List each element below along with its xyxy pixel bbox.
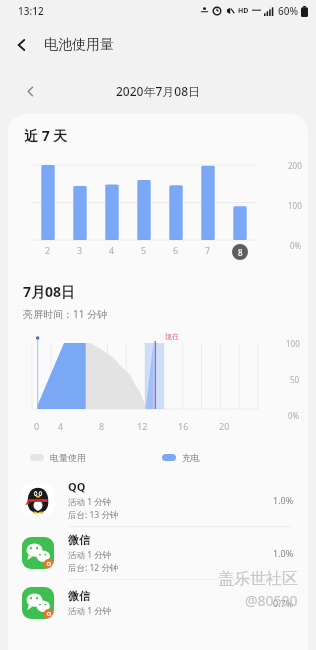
staticText: 0.7%: [273, 597, 294, 609]
staticText: 现在: [165, 332, 179, 341]
staticText: 100: [286, 338, 300, 349]
staticText: 活动 1 分钟: [68, 549, 112, 561]
staticText: 1.0%: [273, 494, 294, 506]
staticText: 13:12: [18, 4, 44, 18]
staticText: 8: [238, 247, 243, 258]
staticText: 活动 1 分钟: [68, 496, 112, 508]
staticText: 0%: [290, 240, 302, 251]
staticText: 8: [99, 420, 105, 432]
staticText: 微信: [68, 589, 90, 603]
staticText: 充电: [182, 452, 200, 463]
staticText: 1.0%: [273, 547, 294, 559]
staticText: 4: [109, 244, 115, 256]
staticText: 电量使用: [50, 452, 86, 463]
staticText: 12: [137, 420, 148, 432]
staticText: 16: [178, 420, 189, 432]
staticText: 0: [34, 420, 40, 432]
staticText: 亮屏时间：11 分钟: [23, 307, 108, 321]
staticText: 近 7 天: [24, 126, 68, 145]
button[interactable]: 微信: [8, 580, 308, 626]
staticText: 7: [205, 244, 211, 256]
button[interactable]: Back: [0, 23, 44, 67]
staticText: 2: [45, 244, 51, 256]
button[interactable]: 微信: [8, 527, 308, 579]
staticText: HD: [238, 6, 249, 16]
staticText: 后台: 12 分钟: [68, 562, 119, 574]
staticText: 20: [219, 420, 230, 432]
staticText: 0%: [288, 410, 300, 421]
button[interactable]: Previous day: [12, 73, 48, 109]
staticText: 7月08日: [23, 282, 76, 301]
staticText: 6: [173, 244, 179, 256]
staticText: 2020年7月08日: [116, 83, 201, 99]
staticText: 100: [288, 200, 302, 211]
staticText: 5: [141, 244, 147, 256]
staticText: 50: [290, 374, 300, 385]
staticText: 200: [288, 160, 302, 171]
staticText: 后台: 13 分钟: [68, 509, 119, 521]
staticText: 3: [77, 244, 83, 256]
staticText: 4: [58, 420, 64, 432]
button[interactable]: 8: [232, 244, 248, 260]
staticText: 电池使用量: [44, 36, 114, 54]
staticText: 60%: [278, 4, 298, 18]
staticText: 盖乐世社区: [218, 569, 298, 589]
staticText: 微信: [68, 533, 90, 547]
button[interactable]: QQ: [8, 474, 308, 526]
staticText: 活动 1 分钟: [68, 605, 112, 617]
staticText: @80500: [245, 591, 298, 610]
staticText: QQ: [68, 479, 86, 494]
